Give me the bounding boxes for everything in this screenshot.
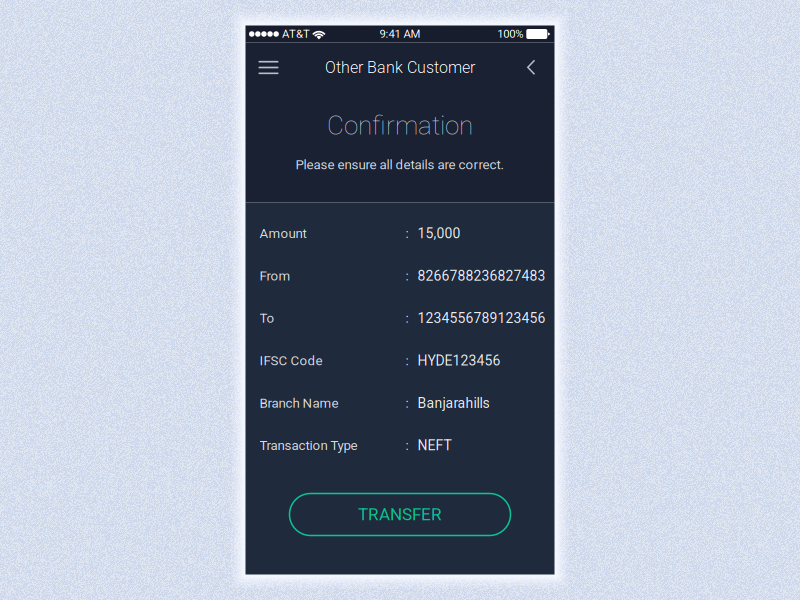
staticText: Transaction Type — [259, 438, 357, 453]
staticText: Please ensure all details are correct. — [295, 157, 504, 173]
staticText: : — [405, 310, 408, 326]
staticText: From — [259, 268, 290, 284]
staticText: 1234556789123456 — [417, 310, 545, 326]
staticText: IFSC Code — [259, 353, 322, 368]
staticText: To — [259, 310, 274, 326]
staticText: NEFT — [417, 437, 451, 454]
staticText: : — [405, 226, 408, 241]
staticText: : — [405, 395, 408, 411]
staticText: 100% — [497, 27, 523, 41]
staticText: 9:41 AM — [379, 27, 420, 41]
button[interactable]: Menu — [245, 42, 291, 92]
staticText: : — [405, 353, 408, 368]
staticText: Confirmation — [327, 110, 473, 141]
staticText: 8266788236827483 — [417, 268, 545, 284]
button[interactable]: TRANSFER — [289, 493, 510, 535]
staticText: TRANSFER — [358, 504, 442, 524]
staticText: Amount — [259, 226, 306, 241]
staticText: AT&T — [282, 27, 310, 41]
staticText: Other Bank Customer — [325, 58, 475, 77]
staticText: : — [405, 438, 408, 453]
staticText: Banjarahills — [417, 395, 489, 411]
staticText: HYDE123456 — [417, 352, 500, 369]
staticText: : — [405, 268, 408, 284]
staticText: 15,000 — [417, 225, 460, 242]
staticText: Branch Name — [259, 395, 338, 411]
button[interactable]: Back — [508, 42, 554, 92]
